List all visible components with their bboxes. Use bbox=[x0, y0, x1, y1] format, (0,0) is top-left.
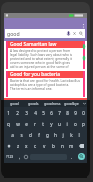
button[interactable]: , bbox=[16, 151, 23, 162]
button[interactable]: b bbox=[49, 140, 58, 151]
button[interactable]: a bbox=[8, 129, 17, 140]
button[interactable]: goodbye bbox=[62, 100, 81, 107]
button[interactable]: l bbox=[75, 129, 83, 140]
button[interactable]: good bbox=[5, 29, 85, 38]
button[interactable]: r bbox=[31, 118, 39, 129]
button[interactable]: s bbox=[17, 129, 26, 140]
staticText: u bbox=[58, 121, 61, 127]
staticText: r bbox=[34, 121, 36, 127]
button[interactable]: h bbox=[51, 129, 59, 140]
staticText: goodness bbox=[44, 101, 61, 106]
staticText: c bbox=[34, 143, 37, 149]
button[interactable]: z bbox=[14, 140, 22, 151]
button[interactable]: ?123 bbox=[4, 151, 16, 162]
staticText: o bbox=[74, 121, 77, 127]
button[interactable]: w bbox=[13, 118, 22, 129]
button[interactable]: i bbox=[63, 118, 71, 129]
staticText: good bbox=[7, 30, 20, 37]
button[interactable]: o bbox=[71, 118, 79, 129]
button[interactable]: 9 bbox=[71, 107, 79, 118]
staticText: goods bbox=[28, 101, 39, 106]
staticText: n bbox=[61, 143, 64, 149]
button[interactable]: Good for you bacteria bbox=[6, 71, 85, 97]
staticText: legal liability. Such laws vary about wh… bbox=[10, 53, 73, 57]
staticText: h bbox=[54, 132, 57, 138]
staticText: t bbox=[42, 121, 44, 127]
staticText: acidophilus are a type of good bacteria. bbox=[10, 83, 70, 87]
staticText: l bbox=[78, 132, 80, 138]
button[interactable]: m bbox=[67, 140, 76, 151]
staticText: b bbox=[52, 143, 55, 149]
button[interactable]: g bbox=[43, 129, 51, 140]
staticText: A law designed to protect a person from bbox=[10, 49, 71, 53]
button[interactable]: f bbox=[35, 129, 43, 140]
staticText: 0 bbox=[82, 110, 85, 116]
staticText: 8 bbox=[66, 110, 69, 116]
button[interactable]: Backspace bbox=[76, 140, 87, 151]
button[interactable]: goodness bbox=[43, 100, 62, 107]
button[interactable]: Emoji bbox=[23, 151, 29, 162]
button[interactable]: Search bbox=[78, 29, 84, 38]
staticText: w bbox=[16, 121, 20, 127]
button[interactable]: Voice search bbox=[66, 29, 71, 38]
button[interactable]: e bbox=[22, 118, 31, 129]
button[interactable]: 3 bbox=[22, 107, 31, 118]
staticText: k bbox=[70, 132, 73, 138]
button[interactable]: Good Samaritan law bbox=[6, 41, 85, 69]
button[interactable]: 0 bbox=[79, 107, 87, 118]
button[interactable]: 1 bbox=[4, 107, 13, 118]
button[interactable]: 5 bbox=[39, 107, 47, 118]
staticText: g bbox=[46, 132, 49, 138]
button[interactable]: More suggestions bbox=[81, 100, 87, 107]
staticText: 5 bbox=[42, 110, 45, 116]
staticText: 4 bbox=[34, 110, 37, 116]
staticText: . bbox=[71, 154, 73, 160]
button[interactable]: goods bbox=[24, 100, 43, 107]
staticText: x bbox=[25, 143, 28, 149]
staticText: 3 bbox=[25, 110, 28, 116]
button[interactable]: good bbox=[4, 100, 24, 107]
button[interactable]: u bbox=[55, 118, 63, 129]
staticText: m bbox=[69, 143, 74, 149]
staticText: e bbox=[25, 121, 28, 127]
staticText: q bbox=[7, 121, 10, 127]
button[interactable]: 2 bbox=[13, 107, 22, 118]
button[interactable]: q bbox=[4, 118, 13, 129]
button[interactable]: 8 bbox=[63, 107, 71, 118]
staticText: p bbox=[82, 121, 85, 127]
staticText: 1 bbox=[7, 110, 10, 116]
button[interactable]: 7 bbox=[55, 107, 63, 118]
button[interactable]: t bbox=[39, 118, 47, 129]
button[interactable]: . bbox=[68, 151, 76, 162]
button[interactable]: p bbox=[79, 118, 87, 129]
staticText: goodbye bbox=[64, 101, 79, 106]
button[interactable]: x bbox=[22, 140, 31, 151]
button[interactable]: Shift bbox=[4, 140, 14, 151]
button[interactable]: k bbox=[67, 129, 75, 140]
staticText: good bbox=[10, 101, 19, 106]
button[interactable]: y bbox=[47, 118, 55, 129]
staticText: Good for you bacteria bbox=[10, 71, 60, 78]
staticText: y bbox=[50, 121, 53, 127]
button[interactable]: Clear bbox=[72, 29, 77, 38]
staticText: j bbox=[62, 132, 64, 138]
staticText: Bacteria that are good for health. Lacto… bbox=[10, 79, 80, 83]
staticText: protected and to what extent; generally … bbox=[10, 57, 72, 61]
staticText: 2 bbox=[16, 110, 19, 116]
staticText: 6 bbox=[50, 110, 53, 116]
button[interactable]: v bbox=[40, 140, 49, 151]
button[interactable]: 4 bbox=[31, 107, 39, 118]
button[interactable]: Search bbox=[78, 153, 85, 160]
staticText: 9 bbox=[74, 110, 77, 116]
staticText: v bbox=[43, 143, 46, 149]
button[interactable]: d bbox=[26, 129, 35, 140]
button[interactable]: 6 bbox=[47, 107, 55, 118]
staticText: z bbox=[17, 143, 20, 149]
button[interactable]: More options bbox=[80, 23, 87, 31]
button[interactable]: n bbox=[58, 140, 67, 151]
staticText: f bbox=[38, 132, 40, 138]
staticText: a bbox=[11, 132, 14, 138]
button[interactable]: c bbox=[31, 140, 40, 151]
button[interactable]: j bbox=[59, 129, 67, 140]
